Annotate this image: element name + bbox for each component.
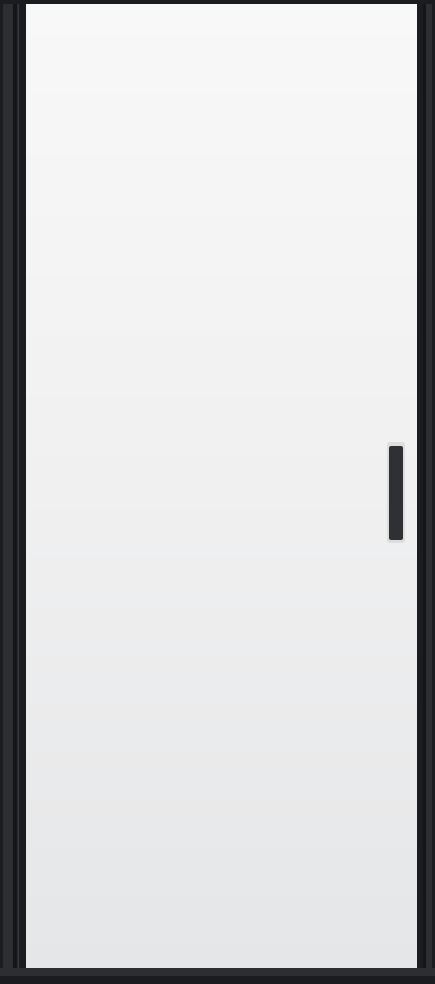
button[interactable]: Scroll position [387,442,405,543]
button[interactable]: Scroll position [26,4,417,968]
